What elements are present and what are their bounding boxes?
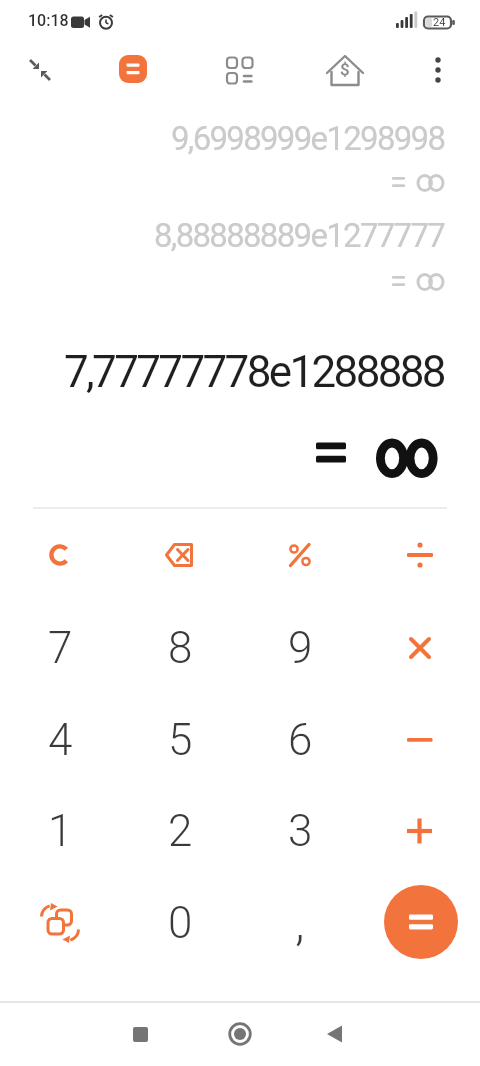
button[interactable]: [424, 52, 452, 88]
button[interactable]: [360, 509, 480, 601]
staticText: 1: [48, 805, 73, 857]
button[interactable]: [221, 51, 257, 87]
button[interactable]: ,: [240, 877, 360, 969]
button[interactable]: [116, 1010, 164, 1058]
staticText: 8,88888889e1277777: [154, 216, 445, 255]
button[interactable]: [119, 55, 147, 83]
button[interactable]: 6: [240, 694, 360, 786]
button[interactable]: 9: [240, 602, 360, 694]
staticText: 0: [168, 897, 193, 949]
staticText: 3: [288, 805, 313, 857]
staticText: 7: [48, 622, 73, 674]
button[interactable]: $: [324, 50, 366, 92]
staticText: 6: [288, 714, 313, 766]
staticText: 9,6998999e1298998: [171, 119, 445, 158]
button[interactable]: [0, 509, 120, 601]
staticText: 9: [288, 622, 313, 674]
staticText: 10:18: [28, 11, 69, 30]
button[interactable]: 2: [120, 785, 240, 877]
staticText: 5: [168, 714, 193, 766]
button[interactable]: [360, 602, 480, 694]
staticText: 8: [168, 622, 193, 674]
button[interactable]: 3: [240, 785, 360, 877]
staticText: $: [340, 59, 350, 79]
button[interactable]: [384, 885, 458, 959]
button[interactable]: 5: [120, 694, 240, 786]
staticText: 24: [433, 16, 446, 29]
staticText: ,: [295, 894, 305, 953]
button[interactable]: [240, 509, 360, 601]
button[interactable]: 8: [120, 602, 240, 694]
button[interactable]: [0, 877, 120, 969]
button[interactable]: [216, 1010, 264, 1058]
staticText: 2: [168, 805, 193, 857]
button[interactable]: [360, 694, 480, 786]
button[interactable]: [120, 509, 240, 601]
button[interactable]: [360, 785, 480, 877]
button[interactable]: [311, 1010, 359, 1058]
button[interactable]: 0: [120, 877, 240, 969]
staticText: 4: [48, 714, 73, 766]
button[interactable]: 1: [0, 785, 120, 877]
button[interactable]: [22, 52, 58, 88]
staticText: 7,77777778e1288888: [64, 346, 444, 398]
button[interactable]: 4: [0, 694, 120, 786]
button[interactable]: 7: [0, 602, 120, 694]
